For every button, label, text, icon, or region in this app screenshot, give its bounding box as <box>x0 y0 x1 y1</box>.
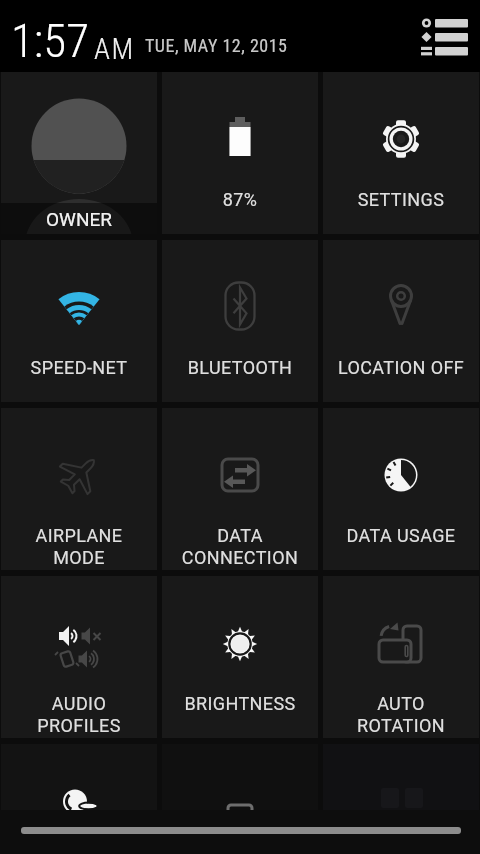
button[interactable] <box>1 744 157 810</box>
button[interactable]: SETTINGS <box>323 72 479 234</box>
button[interactable]: AUDIO PROFILES <box>1 576 157 738</box>
button[interactable]: AUTO ROTATION <box>323 576 479 738</box>
staticText: AUTO ROTATION <box>323 693 479 737</box>
staticText: SETTINGS <box>323 189 479 210</box>
staticText: AIRPLANE MODE <box>1 525 157 569</box>
staticText: OWNER <box>46 208 112 230</box>
staticText: LOCATION OFF <box>323 357 479 378</box>
staticText: 1:57 <box>11 13 90 68</box>
button[interactable]: BLUETOOTH <box>162 240 318 402</box>
button[interactable]: DATA CONNECTION <box>162 408 318 570</box>
button[interactable]: SPEED-NET <box>1 240 157 402</box>
button[interactable]: 87% <box>162 72 318 234</box>
staticText: 87% <box>162 189 318 210</box>
staticText: DATA CONNECTION <box>162 525 318 569</box>
staticText: BRIGHTNESS <box>162 693 318 714</box>
staticText: DATA USAGE <box>323 525 479 546</box>
button[interactable]: DATA USAGE <box>323 408 479 570</box>
button[interactable] <box>162 744 318 810</box>
button[interactable] <box>420 13 472 61</box>
button[interactable]: BRIGHTNESS <box>162 576 318 738</box>
staticText: BLUETOOTH <box>162 357 318 378</box>
staticText: TUE, MAY 12, 2015 <box>145 35 288 56</box>
button[interactable] <box>21 827 461 834</box>
button[interactable]: LOCATION OFF <box>323 240 479 402</box>
staticText: AM <box>94 32 135 66</box>
staticText: SPEED-NET <box>1 357 157 378</box>
button[interactable]: AIRPLANE MODE <box>1 408 157 570</box>
staticText: AUDIO PROFILES <box>1 693 157 737</box>
button[interactable]: OWNER <box>1 72 157 234</box>
